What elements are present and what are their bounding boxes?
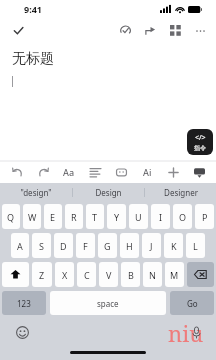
staticText: Y [114, 211, 120, 223]
staticText: Z [39, 269, 45, 281]
button[interactable]: Z [32, 262, 52, 287]
staticText: Q [7, 211, 15, 223]
staticText: Go [187, 298, 198, 309]
staticText: Ai [143, 166, 152, 178]
button[interactable]: 列表 [86, 163, 104, 181]
button[interactable]: 删除 [187, 262, 214, 287]
button[interactable]: Aa [60, 163, 78, 181]
staticText: O [179, 211, 187, 223]
staticText: C [84, 269, 90, 281]
button[interactable]: Y [107, 204, 126, 229]
staticText: K [171, 240, 177, 252]
button[interactable]: G [98, 233, 117, 258]
button[interactable]: 指令 [187, 129, 213, 155]
button[interactable]: B [121, 262, 140, 287]
button[interactable]: I [151, 204, 170, 229]
button[interactable]: space [50, 291, 166, 315]
button[interactable]: "design" [0, 183, 72, 202]
button[interactable]: P [195, 204, 214, 229]
button[interactable]: 上档 [2, 262, 29, 287]
staticText: U [135, 211, 142, 223]
staticText: L [193, 240, 198, 252]
staticText: A [17, 240, 23, 252]
button[interactable]: W [23, 204, 41, 229]
staticText: 9:41 [24, 3, 42, 15]
button[interactable]: O [173, 204, 192, 229]
button[interactable]: 语音输入 [189, 326, 203, 340]
staticText: "design" [20, 187, 52, 198]
button[interactable]: 完成 [8, 20, 28, 40]
button[interactable]: X [55, 262, 74, 287]
staticText: space [97, 298, 119, 309]
button[interactable]: Go [170, 291, 214, 315]
staticText: P [202, 211, 208, 223]
button[interactable]: M [165, 262, 184, 287]
button[interactable]: C [77, 262, 96, 287]
staticText: 指令 [194, 144, 206, 152]
button[interactable]: 云同步 [117, 22, 133, 38]
button[interactable]: 键盘 [190, 163, 208, 181]
staticText: J [150, 240, 153, 252]
button[interactable]: 网格 [167, 22, 183, 38]
staticText: S [39, 240, 44, 252]
staticText: Designer [164, 187, 198, 198]
button[interactable]: U [129, 204, 148, 229]
staticText: E [50, 211, 56, 223]
button[interactable]: 分享 [142, 22, 158, 38]
staticText: V [106, 269, 112, 281]
button[interactable]: 撤销 [8, 163, 26, 181]
button[interactable]: A [11, 233, 29, 258]
staticText: X [62, 269, 68, 281]
button[interactable]: 贴纸 [112, 163, 130, 181]
button[interactable]: V [99, 262, 118, 287]
staticText: M [170, 269, 179, 281]
button[interactable]: R [65, 204, 83, 229]
button[interactable]: Designer [145, 183, 216, 202]
staticText: N [149, 269, 156, 281]
staticText: I [159, 211, 163, 223]
button[interactable]: 添加 [164, 163, 182, 181]
button[interactable]: N [143, 262, 162, 287]
staticText: G [104, 240, 111, 252]
button[interactable]: 重做 [34, 163, 52, 181]
button[interactable]: F [76, 233, 95, 258]
button[interactable]: Ai [138, 163, 156, 181]
staticText: Aa [63, 166, 75, 178]
staticText: D [60, 240, 67, 252]
button[interactable]: Design [73, 183, 144, 202]
button[interactable]: J [142, 233, 161, 258]
staticText: niu [168, 318, 204, 348]
button[interactable]: K [164, 233, 183, 258]
staticText: 无标题 [12, 50, 54, 68]
button[interactable]: L [186, 233, 205, 258]
staticText: Design [95, 187, 122, 198]
staticText: </> [195, 133, 206, 143]
button[interactable]: Q [2, 204, 20, 229]
button[interactable]: 123 [2, 291, 46, 315]
button[interactable]: 更多 [192, 22, 208, 38]
button[interactable]: T [86, 204, 104, 229]
staticText: W [28, 211, 37, 223]
button[interactable]: 表情 [14, 324, 30, 340]
button[interactable]: H [120, 233, 139, 258]
staticText: T [92, 211, 98, 223]
staticText: H [126, 240, 133, 252]
staticText: B [128, 269, 134, 281]
button[interactable]: S [32, 233, 51, 258]
staticText: 123 [17, 298, 31, 309]
button[interactable]: E [44, 204, 62, 229]
staticText: F [83, 240, 88, 252]
staticText: R [71, 211, 77, 223]
button[interactable]: D [54, 233, 73, 258]
